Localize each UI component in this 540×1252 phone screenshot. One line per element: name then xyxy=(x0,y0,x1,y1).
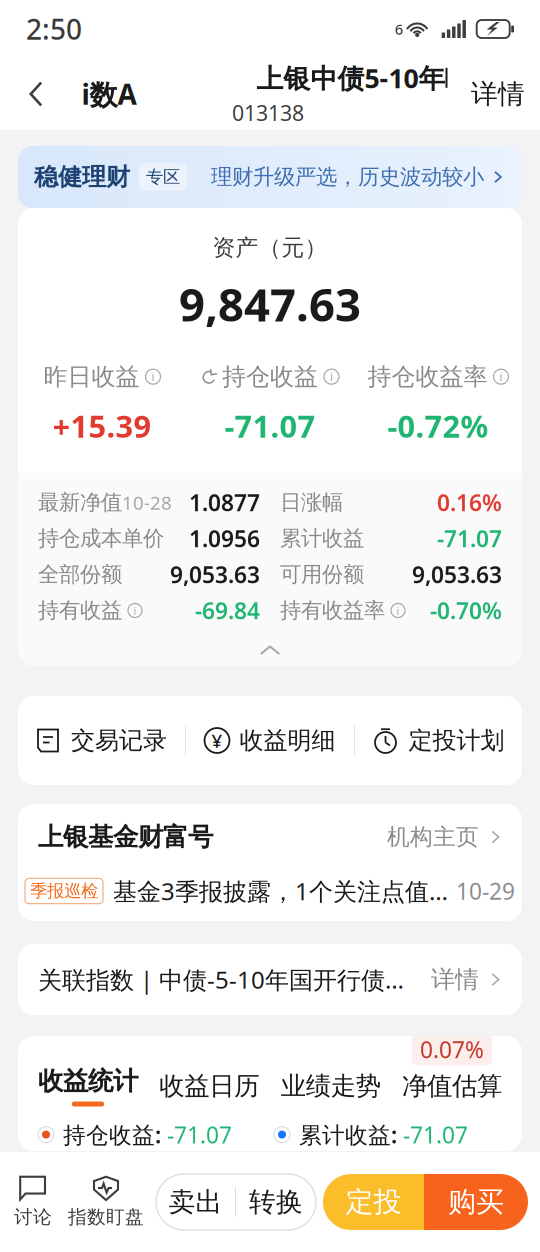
button[interactable]: 交易记录 xyxy=(18,696,185,785)
staticText: 理财升级严选，历史波动较小 xyxy=(211,164,484,190)
staticText: 交易记录 xyxy=(71,726,167,755)
button[interactable]: 详情 xyxy=(454,58,540,130)
staticText: 购买 xyxy=(448,1185,504,1219)
staticText: i xyxy=(499,369,502,385)
staticText: +15.39 xyxy=(52,405,151,446)
staticText: ¥ xyxy=(211,728,222,753)
button[interactable]: 讨论 xyxy=(0,1164,66,1240)
staticText: -69.84 xyxy=(195,595,260,625)
button[interactable]: Back xyxy=(0,58,76,130)
button[interactable]: i数A xyxy=(76,58,142,130)
staticText: 持仓收益率 xyxy=(367,362,487,391)
button[interactable]: ¥ xyxy=(186,696,354,785)
button[interactable]: 稳健理财 xyxy=(18,146,522,208)
staticText: 最新净值 xyxy=(38,489,122,516)
staticText: -71.07 xyxy=(167,1120,232,1150)
staticText: 上银中债5-10年 xyxy=(256,60,445,95)
button[interactable]: 定投 xyxy=(323,1174,528,1230)
button[interactable]: 上银基金财富号 xyxy=(18,804,522,870)
staticText: 关联指数 | 中债-5-10年国开行债… xyxy=(38,964,404,995)
staticText: i xyxy=(151,369,154,385)
staticText: 收益明细 xyxy=(239,726,335,755)
staticText: 净值估算 xyxy=(402,1070,502,1101)
staticText: 详情 xyxy=(431,965,479,994)
staticText: 日涨幅 xyxy=(280,489,343,516)
button[interactable]: 季报巡检 xyxy=(18,870,522,912)
staticText: 定投计划 xyxy=(408,726,504,755)
staticText: 收益日历 xyxy=(159,1070,259,1101)
staticText: -0.72% xyxy=(387,405,488,446)
staticText: 持仓成本单价 xyxy=(38,525,164,552)
staticText: 资产（元） xyxy=(212,234,327,262)
staticText: 0.07% xyxy=(420,1034,484,1064)
staticText: 持仓收益 xyxy=(222,362,318,391)
staticText: 全部份额 xyxy=(38,561,122,588)
staticText: 6 xyxy=(395,19,403,39)
staticText: 指数盯盘 xyxy=(68,1205,144,1228)
staticText: i xyxy=(396,603,399,618)
staticText: 累计收益: xyxy=(299,1120,397,1150)
staticText: 基金3季报披露，1个关注点值… xyxy=(113,875,448,907)
staticText: 转换 xyxy=(249,1186,303,1218)
staticText: 定投 xyxy=(345,1185,401,1219)
staticText: 季报巡检 xyxy=(30,880,98,902)
staticText: 1.0956 xyxy=(189,523,260,553)
button[interactable]: Collapse xyxy=(240,636,300,664)
staticText: 1.0877 xyxy=(189,487,260,517)
button[interactable]: 指数盯盘 xyxy=(66,1164,146,1240)
staticText: 9,053.63 xyxy=(412,559,502,589)
button[interactable]: 关联指数 | 中债-5-10年国开行债… xyxy=(18,944,522,1015)
staticText: 卖出 xyxy=(168,1186,222,1218)
staticText: 持有收益率 xyxy=(280,597,385,624)
staticText: 上银基金财富号 xyxy=(38,821,213,852)
button[interactable]: 定投计划 xyxy=(355,696,522,785)
staticText: 详情 xyxy=(471,78,525,110)
staticText: -0.70% xyxy=(430,595,502,625)
staticText: 稳健理财 xyxy=(34,162,130,192)
staticText: 013138 xyxy=(232,98,304,127)
staticText: i xyxy=(133,603,136,618)
staticText: 业绩走势 xyxy=(281,1070,381,1101)
staticText: -71.07 xyxy=(403,1120,468,1150)
staticText: 昨日收益 xyxy=(43,362,139,391)
staticText: 0.16% xyxy=(437,487,502,517)
staticText: 收益统计 xyxy=(38,1065,138,1096)
staticText: 持仓收益: xyxy=(63,1120,161,1150)
staticText: -71.07 xyxy=(437,523,502,553)
staticText: 持有收益 xyxy=(38,597,122,624)
staticText: 机构主页 xyxy=(387,823,479,851)
staticText: 10-29 xyxy=(456,876,515,906)
staticText: 2:50 xyxy=(26,10,82,48)
staticText: 9,053.63 xyxy=(170,559,260,589)
staticText: 9,847.63 xyxy=(179,274,361,334)
staticText: i xyxy=(330,369,333,385)
staticText: 讨论 xyxy=(14,1205,52,1228)
staticText: 累计收益 xyxy=(280,525,364,552)
staticText: 专区 xyxy=(146,166,180,188)
staticText: 可用份额 xyxy=(280,561,364,588)
staticText: -71.07 xyxy=(224,405,315,446)
staticText: i数A xyxy=(81,75,136,113)
button[interactable]: 卖出 xyxy=(156,1174,316,1230)
staticText: 10-28 xyxy=(122,490,172,515)
